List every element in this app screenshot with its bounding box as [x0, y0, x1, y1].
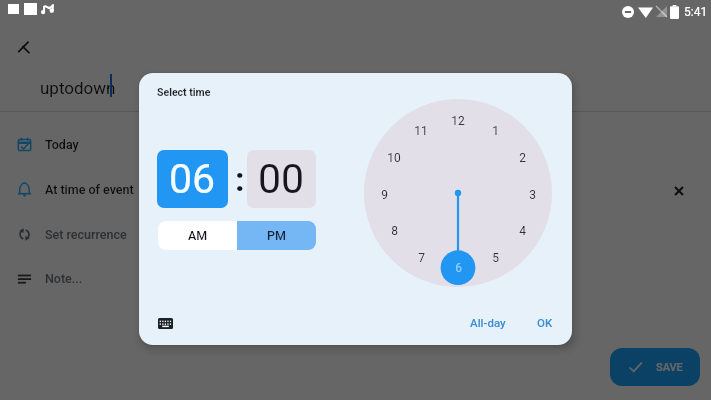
button[interactable]: Note...	[0, 264, 711, 292]
staticText: PM	[267, 228, 286, 243]
staticText: 00	[258, 155, 305, 203]
staticText: uptodown	[40, 78, 116, 98]
staticText: Set recurrence	[45, 227, 127, 242]
button[interactable]: Set recurrence	[0, 220, 711, 248]
staticText: AM	[188, 228, 208, 243]
staticText: 6	[455, 261, 462, 275]
button[interactable]: AM	[158, 221, 237, 250]
button[interactable]: 06	[157, 150, 228, 208]
staticText: 8	[391, 224, 398, 238]
staticText: :	[235, 159, 245, 199]
staticText: At time of event	[45, 182, 134, 197]
staticText: Today	[45, 137, 79, 152]
button[interactable]: OK	[531, 311, 559, 334]
staticText: 1	[492, 124, 499, 138]
button[interactable]: Switch to text input	[153, 311, 177, 335]
staticText: 5	[492, 251, 499, 265]
staticText: 9	[381, 188, 388, 202]
staticText: Note...	[45, 271, 83, 286]
staticText: Select time	[157, 86, 211, 98]
staticText: 7	[418, 251, 425, 265]
staticText: 12	[451, 114, 465, 128]
staticText: SAVE	[656, 361, 683, 374]
staticText: 06	[169, 155, 216, 203]
staticText: 11	[414, 124, 428, 138]
staticText: 2	[519, 151, 526, 165]
button[interactable]: SAVE	[610, 348, 700, 386]
button[interactable]: Remove notification	[668, 180, 690, 202]
button[interactable]: All-day	[464, 311, 512, 334]
staticText: 5:41	[684, 5, 708, 19]
staticText: 4	[519, 224, 526, 238]
staticText: OK	[537, 316, 553, 329]
button[interactable]: Today	[0, 130, 711, 158]
button[interactable]: 00	[247, 150, 316, 208]
staticText: All-day	[470, 316, 506, 329]
staticText: 3	[529, 188, 536, 202]
staticText: 10	[387, 151, 401, 165]
button[interactable]: At time of event	[0, 175, 711, 203]
button[interactable]: Close	[11, 34, 37, 60]
button[interactable]: PM	[237, 221, 316, 250]
